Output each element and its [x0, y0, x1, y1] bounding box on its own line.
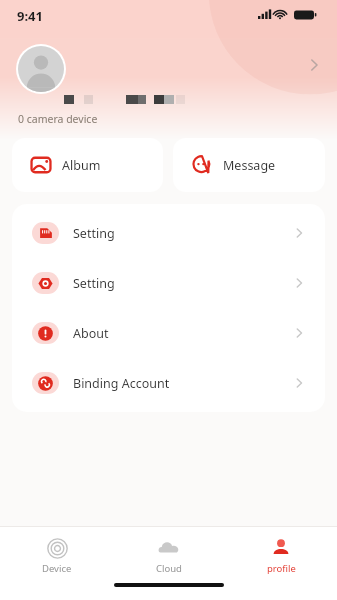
button[interactable]: Setting [12, 258, 325, 308]
button[interactable]: About [12, 308, 325, 358]
button[interactable]: Cloud [113, 533, 225, 575]
staticText: Setting [73, 225, 115, 242]
button[interactable]: profile [225, 533, 337, 575]
button[interactable]: Message [173, 138, 325, 192]
button[interactable]: Setting [12, 208, 325, 258]
staticText: profile [267, 562, 296, 575]
button[interactable]: Album [12, 138, 163, 192]
staticText: Message [223, 157, 276, 174]
staticText: Device [42, 562, 72, 575]
staticText: Binding Account [73, 375, 170, 392]
staticText: About [73, 325, 109, 342]
button[interactable]: Profile avatar [18, 46, 64, 92]
staticText: 9:41 [17, 7, 43, 25]
button[interactable]: Open profile details [300, 50, 330, 80]
button[interactable]: Device [0, 533, 113, 575]
staticText: Setting [73, 275, 115, 292]
staticText: 0 camera device [18, 112, 98, 126]
staticText: Album [62, 157, 101, 174]
button[interactable]: Binding Account [12, 358, 325, 408]
staticText: Cloud [156, 562, 182, 575]
